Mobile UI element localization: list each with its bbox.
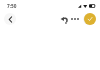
button[interactable]: Back	[4, 13, 16, 25]
button[interactable]: Done	[84, 13, 96, 25]
button[interactable]: Undo	[58, 14, 70, 26]
staticText: 7:50	[7, 3, 17, 9]
button[interactable]: More options	[69, 13, 81, 25]
